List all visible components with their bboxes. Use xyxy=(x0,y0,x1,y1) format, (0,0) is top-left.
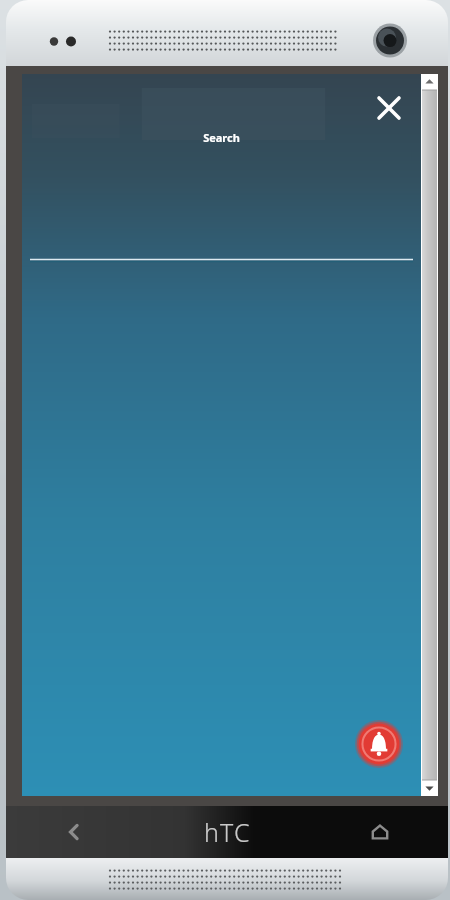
button[interactable]: Search xyxy=(22,130,421,145)
staticText: Search xyxy=(203,130,240,145)
button[interactable]: Notifications xyxy=(355,720,403,768)
button[interactable]: Scroll up xyxy=(421,74,438,796)
button[interactable]: Back xyxy=(6,806,142,858)
button[interactable]: Home xyxy=(312,806,448,858)
button[interactable]: Scroll down xyxy=(421,781,438,796)
button[interactable]: Close xyxy=(369,88,409,128)
button[interactable]: Scroll up xyxy=(421,74,438,89)
button[interactable] xyxy=(422,90,437,780)
button[interactable] xyxy=(30,236,413,262)
staticText: hTC xyxy=(204,815,251,849)
